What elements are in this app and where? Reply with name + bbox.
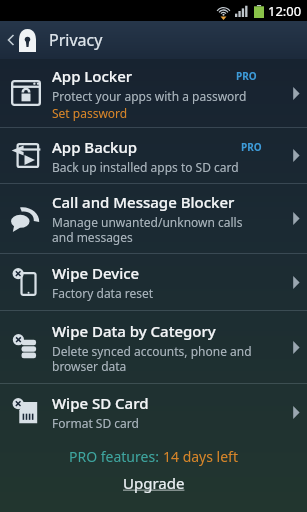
other: Call and Message Blocker — [11, 206, 41, 232]
other: Wipe SD Card — [12, 398, 40, 426]
button[interactable]: Wipe SD Card — [0, 384, 307, 440]
staticText: PRO — [241, 140, 262, 154]
staticText: Format SD card — [52, 415, 139, 431]
other: App Backup — [11, 143, 41, 168]
staticText: Factory data reset — [52, 285, 154, 301]
button[interactable]: App Locker — [0, 59, 307, 127]
staticText: Wipe Device — [52, 263, 140, 283]
staticText: Manage unwanted/unknown calls and messag… — [52, 214, 243, 245]
button[interactable]: Call and Message Blocker — [0, 184, 307, 253]
staticText: 14 days left — [163, 447, 238, 466]
staticText: App Locker — [52, 66, 133, 86]
button[interactable]: Set password — [52, 105, 128, 121]
staticText: Protect your apps with a password — [52, 88, 247, 104]
other: Wipe Device — [12, 268, 40, 296]
other: App Locker — [11, 80, 41, 106]
other: Wipe Data by Category — [12, 333, 40, 361]
button[interactable]: Wipe Data by Category — [0, 311, 307, 383]
button[interactable]: Privacy — [0, 21, 307, 59]
staticText: Delete synced accounts, phone and browse… — [52, 343, 252, 374]
staticText: Call and Message Blocker — [52, 192, 235, 212]
button[interactable]: Wipe Device — [0, 254, 307, 310]
staticText: Privacy — [49, 29, 103, 51]
button[interactable]: Upgrade — [123, 473, 185, 493]
staticText: 12:00 — [268, 2, 302, 20]
staticText: App Backup — [52, 137, 138, 157]
staticText: Wipe SD Card — [52, 393, 149, 413]
staticText: Back up installed apps to SD card — [52, 159, 239, 175]
button[interactable]: App Backup — [0, 128, 307, 183]
staticText: PRO — [236, 69, 257, 83]
staticText: Wipe Data by Category — [52, 321, 216, 341]
staticText: PRO features: — [69, 447, 163, 466]
